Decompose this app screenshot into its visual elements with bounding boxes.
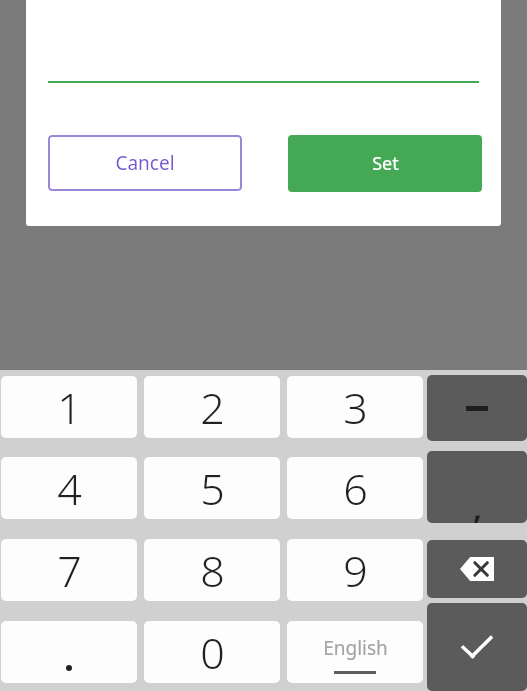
staticText: 6	[343, 459, 368, 518]
staticText: 9	[343, 541, 368, 600]
button[interactable]: 0	[144, 621, 280, 683]
staticText: Set	[372, 151, 399, 176]
staticText: 2	[200, 378, 225, 437]
button[interactable]: 7	[1, 539, 137, 601]
button[interactable]: Comma	[427, 451, 527, 523]
button[interactable]: Cancel	[48, 135, 242, 191]
button[interactable]: 4	[1, 457, 137, 519]
button[interactable]: 9	[287, 539, 423, 601]
staticText: ,	[473, 487, 482, 523]
button[interactable]	[1, 621, 137, 683]
staticText: 1	[57, 378, 82, 437]
button[interactable]: Backspace	[427, 540, 527, 598]
button[interactable]: English language	[287, 621, 423, 683]
button[interactable]: 6	[287, 457, 423, 519]
staticText: Cancel	[115, 150, 175, 176]
button[interactable]: 8	[144, 539, 280, 601]
button[interactable]: Set	[288, 135, 482, 192]
button[interactable]: 3	[287, 376, 423, 438]
staticText: 0	[200, 623, 225, 682]
staticText: 5	[200, 459, 225, 518]
button[interactable]: 5	[144, 457, 280, 519]
staticText: 4	[57, 459, 82, 518]
staticText: 8	[200, 541, 225, 600]
button[interactable]: Minus	[427, 375, 527, 441]
button[interactable]: 1	[1, 376, 137, 438]
staticText: 7	[57, 541, 82, 600]
button[interactable]: Enter	[427, 603, 527, 691]
staticText: English	[323, 635, 388, 661]
staticText: 3	[343, 378, 368, 437]
button[interactable]: 2	[144, 376, 280, 438]
